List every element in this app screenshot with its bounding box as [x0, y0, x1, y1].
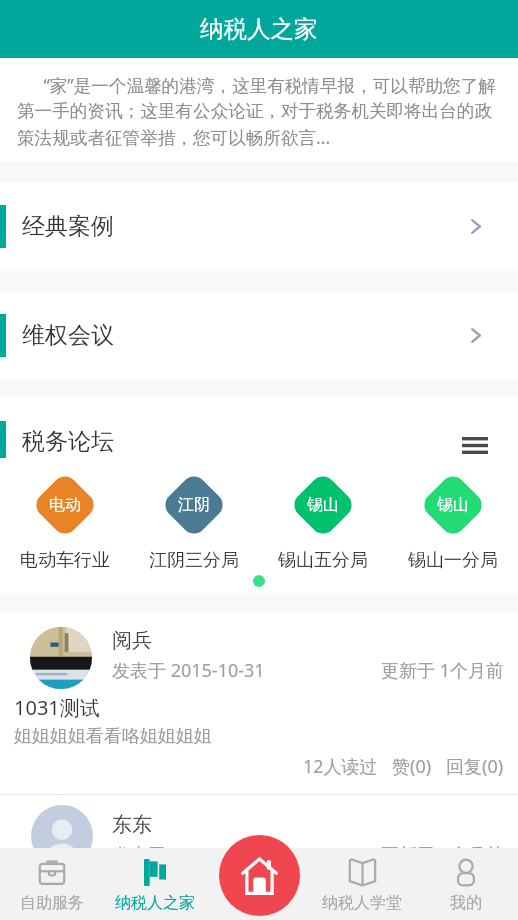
- button[interactable]: 阅兵: [0, 613, 518, 794]
- button[interactable]: 我的: [414, 848, 518, 920]
- button[interactable]: 纳税人之家: [103, 848, 206, 920]
- staticText: 锡山: [307, 495, 339, 515]
- button[interactable]: 江阴: [129, 475, 258, 572]
- staticText: 发表于 2015-10-31: [112, 658, 265, 683]
- staticText: 12人读过: [303, 754, 378, 779]
- staticText: 更新于 1个月前: [381, 842, 504, 867]
- staticText: 锡山一分局: [408, 549, 498, 572]
- button[interactable]: 维权会议: [0, 291, 518, 379]
- staticText: 纳税人之家: [200, 14, 318, 44]
- button[interactable]: 电动: [0, 475, 129, 572]
- staticText: 赞(0): [392, 754, 432, 779]
- staticText: 经典案例: [22, 212, 114, 241]
- staticText: 更新于 1个月前: [381, 658, 504, 683]
- staticText: 1031测试: [14, 694, 100, 721]
- button[interactable]: 经典案例: [0, 182, 518, 271]
- staticText: 江阴: [178, 495, 210, 515]
- button[interactable]: 锡山: [258, 475, 388, 572]
- button[interactable]: 首页: [219, 835, 300, 916]
- staticText: 发表于 2015-10-30: [112, 842, 265, 867]
- staticText: 阅兵: [112, 628, 152, 653]
- staticText: “家”是一个温馨的港湾，这里有税情早报，可以帮助您了解 第一手的资讯；这里有公众…: [17, 73, 496, 150]
- staticText: 纳税人学堂: [322, 893, 402, 913]
- staticText: 我的: [450, 893, 482, 913]
- staticText: 姐姐姐姐看看咯姐姐姐姐: [14, 725, 212, 748]
- staticText: 江阴三分局: [149, 549, 239, 572]
- staticText: 电动车行业: [20, 549, 110, 572]
- button[interactable]: 自助服务: [0, 848, 103, 920]
- staticText: 自助服务: [20, 893, 84, 913]
- staticText: 电动: [49, 495, 81, 515]
- staticText: 东东: [112, 812, 152, 837]
- staticText: 锡山: [437, 495, 469, 515]
- button[interactable]: 纳税人学堂: [310, 848, 414, 920]
- button[interactable]: 东东: [0, 795, 518, 920]
- button[interactable]: 锡山: [388, 475, 518, 572]
- staticText: 维权会议: [22, 321, 114, 350]
- staticText: 回复(0): [446, 754, 504, 779]
- staticText: 税务论坛: [22, 427, 114, 456]
- staticText: 纳税人之家: [115, 893, 195, 913]
- staticText: 锡山五分局: [278, 549, 368, 572]
- button[interactable]: 菜单: [458, 428, 492, 462]
